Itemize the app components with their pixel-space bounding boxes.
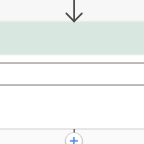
button[interactable] bbox=[0, 106, 144, 144]
button[interactable] bbox=[0, 22, 144, 56]
button[interactable] bbox=[0, 62, 144, 84]
button[interactable] bbox=[0, 84, 144, 106]
button[interactable]: Compose bbox=[65, 132, 82, 144]
